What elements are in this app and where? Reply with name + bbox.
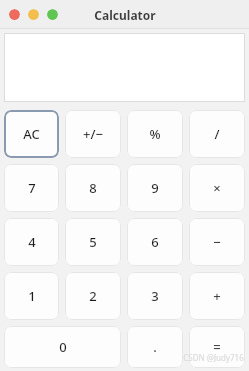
staticText: 5	[89, 233, 97, 251]
button[interactable]: Close	[9, 9, 20, 20]
button[interactable]: +/−	[65, 110, 121, 158]
staticText: 9	[151, 179, 159, 197]
button[interactable]: +	[189, 272, 245, 320]
button[interactable]: =	[189, 326, 245, 368]
staticText: 2	[89, 287, 97, 305]
staticText: Calculator	[94, 7, 156, 23]
button[interactable]: ×	[189, 164, 245, 212]
button[interactable]: 2	[65, 272, 121, 320]
button[interactable]: AC	[4, 110, 59, 158]
staticText: 8	[89, 179, 97, 197]
staticText: 1	[28, 287, 36, 305]
staticText: AC	[23, 125, 40, 143]
button[interactable]: 5	[65, 218, 121, 266]
staticText: −	[213, 233, 221, 251]
button[interactable]: −	[189, 218, 245, 266]
button[interactable]: 0	[4, 326, 121, 368]
button[interactable]: /	[189, 110, 245, 158]
button[interactable]: 8	[65, 164, 121, 212]
button[interactable]: Maximize	[47, 9, 58, 20]
button[interactable]: 1	[4, 272, 59, 320]
staticText: ×	[213, 179, 221, 197]
staticText: 3	[151, 287, 159, 305]
button[interactable]: 7	[4, 164, 59, 212]
button[interactable]: 4	[4, 218, 59, 266]
staticText: +/−	[83, 125, 103, 143]
button[interactable]: %	[127, 110, 183, 158]
staticText: 7	[28, 179, 36, 197]
staticText: /	[214, 125, 220, 143]
staticText: CSDN @Judy716	[183, 352, 244, 363]
button[interactable]: 3	[127, 272, 183, 320]
staticText: 4	[28, 233, 36, 251]
button[interactable]: 6	[127, 218, 183, 266]
staticText: .	[153, 338, 157, 356]
staticText: =	[213, 338, 221, 356]
button[interactable]: .	[127, 326, 183, 368]
staticText: 6	[151, 233, 159, 251]
staticText: %	[149, 125, 161, 143]
button[interactable]: Minimize	[28, 9, 39, 20]
staticText: 0	[59, 338, 67, 356]
staticText: +	[213, 287, 221, 305]
button[interactable]: 9	[127, 164, 183, 212]
